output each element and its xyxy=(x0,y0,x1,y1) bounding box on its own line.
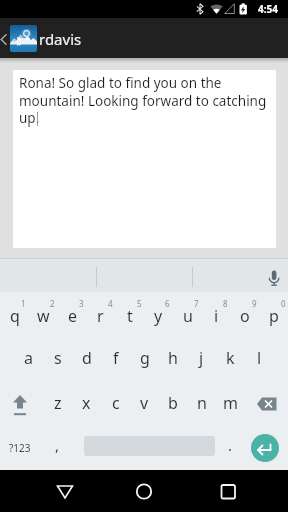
button[interactable]: . xyxy=(216,425,245,470)
button[interactable] xyxy=(197,472,247,510)
button[interactable]: l xyxy=(245,336,274,380)
staticText: Rona! So glad to find you on the mountai… xyxy=(19,74,267,127)
staticText: w xyxy=(37,305,50,327)
button[interactable]: rdavis xyxy=(39,26,119,52)
staticText: j xyxy=(199,347,204,369)
staticText: q xyxy=(10,305,20,327)
button[interactable]: f xyxy=(101,336,130,380)
button[interactable] xyxy=(40,472,90,510)
button[interactable]: ?123 xyxy=(0,425,40,470)
staticText: 6 xyxy=(165,298,170,309)
button[interactable]: Rona! So glad to find you on the mountai… xyxy=(13,70,276,248)
staticText: n xyxy=(197,392,207,414)
staticText: u xyxy=(183,305,193,327)
staticText: x xyxy=(82,392,91,414)
button[interactable]: o xyxy=(230,292,259,336)
button[interactable]: k xyxy=(216,336,245,380)
button[interactable]: y xyxy=(144,292,173,336)
button[interactable] xyxy=(119,472,169,510)
staticText: d xyxy=(82,347,92,369)
staticText: m xyxy=(223,392,238,414)
staticText: 4 xyxy=(108,298,113,309)
button[interactable]: c xyxy=(101,381,130,425)
staticText: 0 xyxy=(281,298,286,309)
button[interactable]: ResortApp xyxy=(10,25,37,52)
button[interactable]: t xyxy=(115,292,144,336)
staticText: k xyxy=(226,347,235,369)
staticText: g xyxy=(140,347,150,369)
staticText: rdavis xyxy=(39,29,82,49)
button[interactable]: v xyxy=(130,381,159,425)
staticText: ResortApp xyxy=(17,36,30,46)
staticText: 9 xyxy=(252,298,257,309)
button[interactable]: q xyxy=(0,292,29,336)
button[interactable]: s xyxy=(43,336,72,380)
staticText: , xyxy=(55,435,60,455)
staticText: f xyxy=(113,347,119,369)
staticText: b xyxy=(168,392,178,414)
staticText: z xyxy=(54,392,62,414)
staticText: ?123 xyxy=(9,441,31,455)
button[interactable]: b xyxy=(158,381,187,425)
button[interactable]: e xyxy=(58,292,87,336)
button[interactable]: d xyxy=(72,336,101,380)
button[interactable]: p xyxy=(259,292,288,336)
staticText: h xyxy=(168,347,178,369)
staticText: i xyxy=(214,305,219,327)
staticText: v xyxy=(140,392,149,414)
button[interactable]: g xyxy=(130,336,159,380)
button[interactable]: n xyxy=(187,381,216,425)
button[interactable]: u xyxy=(173,292,202,336)
staticText: r xyxy=(97,305,104,327)
button[interactable]: z xyxy=(43,381,72,425)
button[interactable]: m xyxy=(216,381,245,425)
staticText: 4:54 xyxy=(258,2,278,16)
staticText: 3 xyxy=(79,298,84,309)
staticText: a xyxy=(24,347,33,369)
staticText: 2 xyxy=(50,298,55,309)
staticText: 8 xyxy=(223,298,228,309)
button[interactable]: i xyxy=(202,292,231,336)
button[interactable] xyxy=(4,385,38,421)
staticText: t xyxy=(127,305,133,327)
button[interactable] xyxy=(250,385,284,421)
staticText: 5 xyxy=(137,298,142,309)
button[interactable] xyxy=(262,262,287,289)
staticText: e xyxy=(68,305,78,327)
button[interactable]: w xyxy=(29,292,58,336)
button[interactable]: x xyxy=(72,381,101,425)
button[interactable] xyxy=(251,434,279,462)
staticText: 7 xyxy=(194,298,199,309)
button[interactable]: , xyxy=(43,425,72,470)
staticText: l xyxy=(257,347,262,369)
staticText: . xyxy=(228,435,233,455)
button[interactable]: h xyxy=(158,336,187,380)
button[interactable]: r xyxy=(86,292,115,336)
staticText: 1 xyxy=(21,298,26,309)
button[interactable]: a xyxy=(14,336,43,380)
staticText: s xyxy=(54,347,62,369)
staticText: y xyxy=(154,305,163,327)
staticText: c xyxy=(112,392,120,414)
staticText: o xyxy=(240,305,250,327)
staticText: p xyxy=(269,305,279,327)
button[interactable]: j xyxy=(187,336,216,380)
